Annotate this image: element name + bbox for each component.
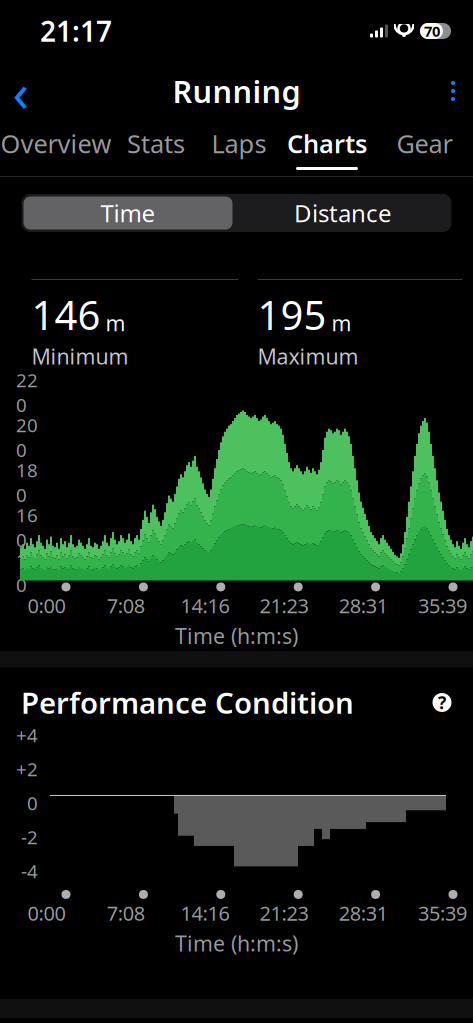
staticText: Distance — [294, 197, 392, 229]
staticText: Overview — [0, 127, 111, 160]
staticText: Minimum — [31, 342, 128, 370]
staticText: +4 — [16, 723, 38, 747]
staticText: 220 — [16, 368, 38, 417]
staticText: Gear — [396, 127, 452, 160]
staticText: 28:31 — [339, 592, 388, 619]
staticText: Performance Condition — [21, 683, 354, 722]
staticText: 21:23 — [260, 900, 309, 926]
button[interactable]: More options — [427, 63, 473, 119]
button[interactable]: Distance — [234, 194, 451, 232]
button[interactable]: Stats — [112, 120, 200, 176]
staticText: 35:39 — [418, 592, 467, 619]
button[interactable]: Help about Performance Condition — [425, 685, 459, 719]
staticText: +2 — [16, 757, 38, 781]
button[interactable]: Laps — [200, 120, 278, 176]
staticText: Running — [172, 71, 300, 111]
staticText: Charts — [287, 127, 367, 160]
button[interactable]: Gear — [376, 120, 473, 176]
staticText: Time (h:m:s) — [175, 929, 298, 957]
staticText: m — [105, 309, 125, 337]
staticText: 160 — [16, 503, 38, 552]
staticText: -2 — [21, 825, 38, 849]
staticText: 195 — [257, 288, 326, 341]
staticText: 14:16 — [180, 592, 229, 619]
staticText: 14:16 — [180, 900, 229, 926]
staticText: 35:39 — [418, 900, 467, 926]
staticText: 0 — [27, 791, 38, 815]
button[interactable]: Overview — [0, 120, 112, 176]
staticText: 28:31 — [339, 900, 388, 926]
staticText: 140 — [16, 548, 38, 597]
staticText: Time (h:m:s) — [175, 621, 298, 650]
staticText: -4 — [21, 859, 38, 883]
staticText: 200 — [16, 413, 38, 462]
staticText: Stats — [127, 127, 185, 160]
staticText: Time — [100, 197, 155, 229]
staticText: m — [331, 309, 351, 337]
staticText: 7:08 — [107, 592, 145, 619]
staticText: 70 — [424, 21, 440, 41]
staticText: 21:17 — [40, 12, 112, 50]
staticText: 180 — [16, 458, 38, 507]
staticText: 7:08 — [107, 900, 145, 926]
staticText: 0:00 — [27, 900, 65, 926]
staticText: 146 — [31, 288, 100, 341]
staticText: 0:00 — [27, 592, 65, 619]
button[interactable]: Back — [0, 63, 48, 119]
button[interactable]: Time — [21, 194, 234, 232]
button[interactable]: Charts — [278, 120, 376, 176]
staticText: Maximum — [257, 342, 358, 370]
staticText: 21:23 — [260, 592, 309, 619]
staticText: ‹ — [12, 56, 29, 126]
staticText: Laps — [211, 127, 266, 160]
staticText: ? — [438, 691, 446, 714]
